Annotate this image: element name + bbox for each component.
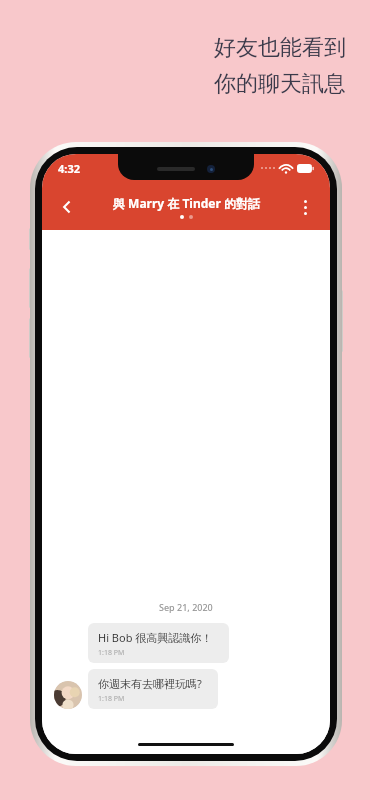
staticText: 4:32: [58, 161, 80, 176]
button[interactable]: Hi Bob 很高興認識你！: [54, 623, 318, 663]
staticText: 好友也能看到: [214, 34, 346, 62]
staticText: 你的聊天訊息: [214, 70, 346, 98]
staticText: Hi Bob 很高興認識你！: [98, 630, 213, 645]
staticText: 與 Marry 在 Tinder 的對話: [113, 195, 260, 211]
staticText: 你週末有去哪裡玩嗎?: [98, 676, 202, 691]
staticText: Sep 21, 2020: [159, 601, 213, 613]
button[interactable]: 你週末有去哪裡玩嗎?: [54, 669, 318, 709]
button[interactable]: Back: [50, 190, 84, 224]
staticText: 1:18 PM: [98, 694, 125, 704]
button[interactable]: More options: [288, 190, 322, 224]
staticText: 1:18 PM: [98, 648, 125, 658]
